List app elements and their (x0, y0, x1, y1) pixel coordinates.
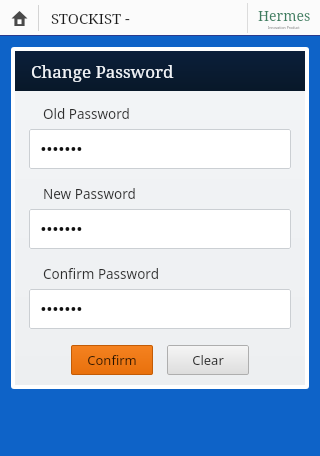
staticText: Innovation Product (268, 25, 300, 30)
staticText: Change Password (31, 60, 174, 83)
button[interactable] (29, 209, 291, 249)
button[interactable] (29, 129, 291, 169)
staticText: Old Password (43, 105, 130, 123)
staticText: Hermes (258, 6, 311, 25)
staticText: STOCKIST - (51, 8, 130, 28)
staticText: Clear (192, 351, 224, 369)
button[interactable]: Clear (167, 345, 249, 375)
staticText: New Password (43, 185, 136, 203)
staticText: Confirm Password (43, 265, 159, 283)
button[interactable]: Confirm (71, 345, 153, 375)
button[interactable]: Hermes (248, 6, 320, 30)
staticText: Confirm (87, 351, 137, 369)
button[interactable]: Home (0, 0, 38, 36)
button[interactable] (29, 289, 291, 329)
